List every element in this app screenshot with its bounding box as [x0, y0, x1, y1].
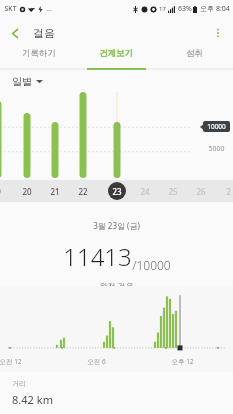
staticText: 63%: [178, 4, 192, 14]
button[interactable]: 21: [43, 180, 67, 202]
staticText: 10000: [207, 122, 226, 131]
staticText: 2: [226, 186, 231, 197]
staticText: 24: [140, 186, 150, 197]
staticText: 일별: [12, 75, 32, 88]
staticText: /10000: [132, 257, 171, 273]
button[interactable]: 22: [71, 180, 95, 202]
button[interactable]: 섬취: [155, 48, 233, 59]
staticText: 걸음: [33, 26, 55, 40]
button[interactable]: Back: [0, 18, 30, 48]
staticText: 3월 23일 (금): [93, 220, 140, 231]
staticText: SKT: [4, 4, 17, 14]
staticText: 11413: [63, 240, 132, 273]
button[interactable]: 25: [161, 180, 185, 202]
button[interactable]: 24: [133, 180, 157, 202]
button[interactable]: More options: [203, 18, 233, 48]
staticText: 23: [112, 186, 122, 197]
staticText: 21: [50, 186, 60, 197]
staticText: 오후 8:04: [200, 4, 230, 14]
button[interactable]: 건계보기: [77, 48, 155, 59]
button[interactable]: 9: [0, 180, 10, 202]
staticText: 거리: [12, 379, 26, 388]
staticText: 기록하기: [22, 48, 56, 59]
staticText: ...: [46, 4, 52, 14]
staticText: 20: [22, 186, 32, 197]
staticText: 8.42 km: [12, 392, 53, 407]
staticText: 26: [196, 186, 206, 197]
staticText: 22: [78, 186, 88, 197]
staticText: 오후 12: [171, 357, 194, 366]
staticText: 오전 12: [0, 357, 22, 366]
button[interactable]: 2: [216, 180, 233, 202]
staticText: 완전 걸음: [99, 280, 134, 286]
button[interactable]: 26: [189, 180, 213, 202]
button[interactable]: 23: [105, 180, 129, 202]
staticText: 9: [0, 186, 1, 197]
staticText: 5000: [208, 144, 225, 154]
staticText: 건계보기: [99, 48, 133, 59]
button[interactable]: 기록하기: [0, 48, 77, 59]
staticText: 섬취: [186, 48, 203, 59]
staticText: 25: [168, 186, 178, 197]
button[interactable]: 20: [15, 180, 39, 202]
button[interactable]: 일별: [12, 75, 43, 88]
button[interactable]: 거리: [0, 372, 233, 412]
staticText: 17: [159, 5, 166, 13]
staticText: 오전 6: [87, 357, 106, 366]
